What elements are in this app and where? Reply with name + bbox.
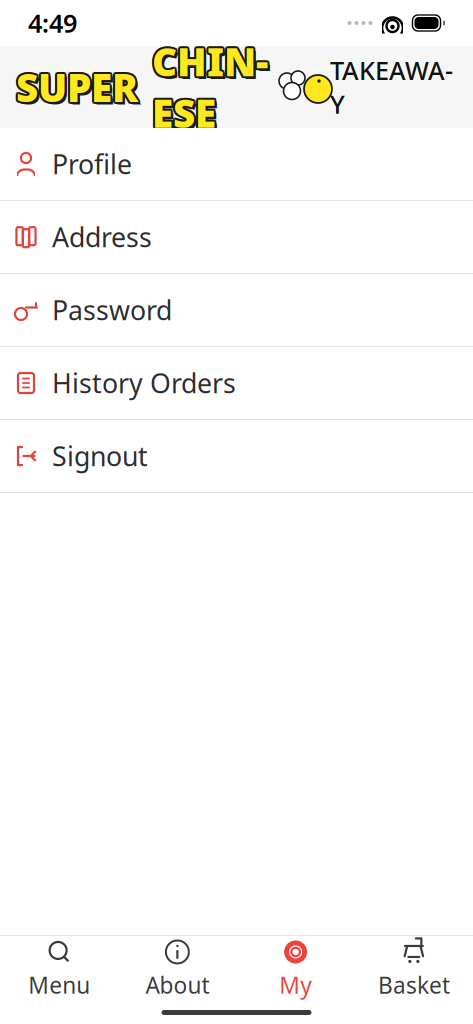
staticText: CHINESE [155,38,271,141]
staticText: Menu [28,970,90,1000]
button[interactable]: History Orders [0,347,473,420]
staticText: CHINESE [150,34,266,137]
staticText: CHINESE [150,37,266,140]
staticText: SUPER [18,61,140,113]
staticText: SUPER [16,63,138,115]
staticText: TAKEAWAY [330,53,453,121]
staticText: SUPER [18,60,140,111]
button[interactable]: Menu [0,938,118,1000]
button[interactable]: Profile [0,128,473,201]
staticText: SUPER [16,61,138,113]
staticText: SUPER [14,60,136,111]
staticText: SUPER [14,61,136,113]
staticText: SUPER [19,64,141,115]
staticText: CHINESE [152,36,268,138]
staticText: CHINESE [154,37,270,140]
staticText: SUPER [16,59,138,111]
staticText: Profile [52,146,132,182]
staticText: My [279,970,312,1000]
staticText: CHINESE [152,38,268,140]
staticText: SUPER [14,63,136,114]
staticText: CHINESE [154,34,270,137]
button[interactable]: Basket [355,938,473,1000]
staticText: Password [52,292,172,328]
staticText: 4:49 [28,6,77,40]
staticText: SUPER [18,63,140,114]
button[interactable]: My [236,938,355,1000]
staticText: Basket [378,970,450,1000]
staticText: Signout [52,438,148,474]
button[interactable]: Password [0,274,473,347]
staticText: CHINESE [150,36,266,138]
staticText: CHINESE [154,36,270,138]
staticText: History Orders [52,365,236,401]
staticText: Address [52,219,152,255]
staticText: About [145,970,209,1000]
button[interactable]: Address [0,201,473,274]
button[interactable]: About [118,938,236,1000]
button[interactable]: Signout [0,420,473,493]
staticText: CHINESE [152,34,268,136]
